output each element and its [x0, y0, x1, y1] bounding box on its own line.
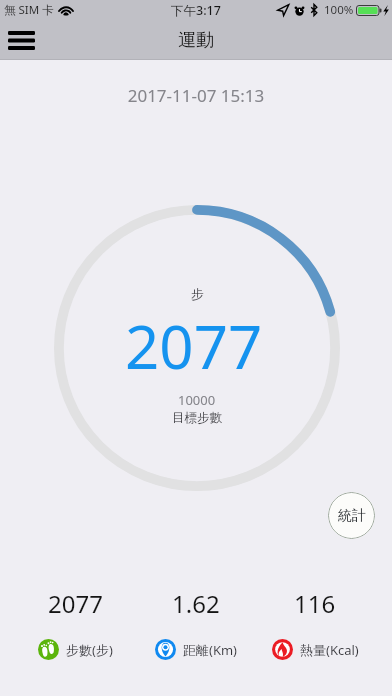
button[interactable]: 1.62	[133, 576, 259, 696]
staticText: 距離(Km)	[183, 641, 238, 659]
staticText: 熱量(Kcal)	[300, 641, 359, 659]
staticText: 下午3:17	[171, 2, 221, 19]
button[interactable]: 統計	[328, 492, 375, 539]
staticText: 2077	[48, 587, 103, 620]
staticText: 1.62	[172, 587, 220, 620]
staticText: 步	[191, 286, 204, 302]
staticText: 2017-11-07 15:13	[0, 84, 392, 107]
staticText: 運動	[178, 29, 214, 52]
button[interactable]: 2077	[12, 576, 138, 696]
staticText: 116	[294, 587, 336, 620]
staticText: 10000	[178, 391, 216, 409]
staticText: 100%	[324, 2, 354, 18]
button[interactable]: Menu	[0, 20, 42, 60]
staticText: 統計	[338, 507, 366, 525]
button[interactable]: 116	[252, 576, 378, 696]
staticText: 步數(步)	[66, 641, 113, 659]
staticText: 無 SIM 卡	[4, 2, 54, 18]
staticText: 2077	[125, 305, 263, 387]
staticText: 目標步數	[172, 410, 222, 426]
